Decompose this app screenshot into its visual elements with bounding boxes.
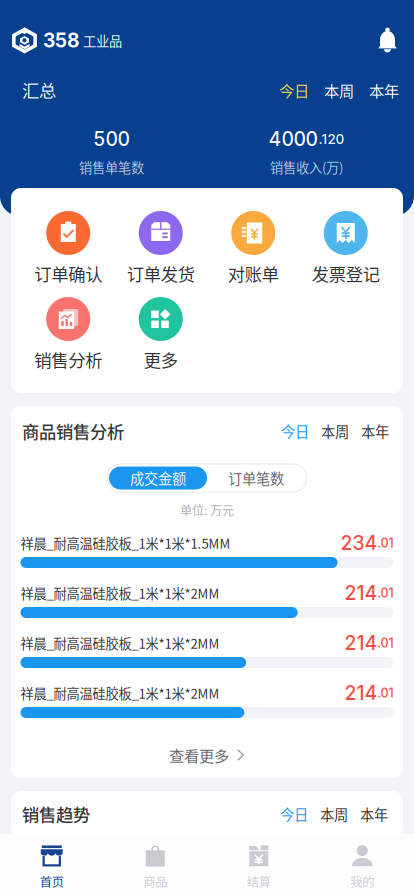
staticText: .01 bbox=[377, 585, 393, 601]
staticText: 订单笔数 bbox=[228, 468, 284, 488]
staticText: 销售趋势 bbox=[22, 801, 90, 826]
button[interactable]: 查看更多 bbox=[11, 735, 403, 775]
button[interactable]: 首页 bbox=[0, 834, 103, 896]
staticText: 成交金额 bbox=[130, 468, 186, 488]
staticText: .01 bbox=[377, 635, 393, 651]
button[interactable]: 通知 bbox=[374, 27, 401, 54]
staticText: 我的 bbox=[350, 873, 374, 890]
staticText: 本周 bbox=[320, 804, 348, 824]
button[interactable]: 更多 bbox=[114, 297, 207, 368]
staticText: 今日 bbox=[280, 804, 308, 824]
staticText: 祥晨_耐高温硅胶板_1米*1米*1.5MM bbox=[20, 533, 230, 553]
button[interactable]: 订单确认 bbox=[22, 211, 114, 282]
staticText: 汇总 bbox=[22, 77, 56, 102]
staticText: 214 bbox=[344, 631, 377, 655]
button[interactable]: 发票登记 bbox=[299, 211, 392, 282]
staticText: 订单确认 bbox=[34, 261, 102, 286]
staticText: 234 bbox=[340, 531, 377, 555]
staticText: 500 bbox=[93, 127, 129, 151]
staticText: 对账单 bbox=[228, 261, 279, 286]
staticText: 本年 bbox=[361, 421, 389, 441]
button[interactable]: 今日 bbox=[280, 804, 308, 824]
staticText: 本年 bbox=[360, 804, 388, 824]
button[interactable]: 本年 bbox=[348, 804, 388, 824]
staticText: 发票登记 bbox=[312, 261, 380, 286]
button[interactable]: 成交金额 bbox=[109, 466, 207, 489]
staticText: 工业品 bbox=[83, 31, 122, 50]
staticText: 单位: 万元 bbox=[180, 501, 234, 519]
button[interactable]: 销售分析 bbox=[22, 297, 114, 368]
staticText: 本周 bbox=[321, 421, 349, 441]
staticText: 祥晨_耐高温硅胶板_1米*1米*2MM bbox=[20, 633, 219, 653]
button[interactable]: 对账单 bbox=[207, 211, 299, 282]
staticText: 销售单笔数 bbox=[79, 157, 144, 177]
staticText: 4000 bbox=[268, 127, 317, 151]
staticText: 更多 bbox=[144, 347, 178, 372]
button[interactable]: 订单发货 bbox=[114, 211, 207, 282]
button[interactable]: 今日 bbox=[279, 79, 309, 101]
button[interactable]: 今日 bbox=[281, 421, 309, 441]
staticText: .01 bbox=[377, 535, 393, 551]
staticText: 今日 bbox=[279, 79, 309, 101]
button[interactable]: 本年 bbox=[349, 421, 389, 441]
staticText: 查看更多 bbox=[169, 744, 229, 766]
button[interactable]: 结算 bbox=[207, 834, 310, 896]
staticText: 商品 bbox=[143, 873, 167, 890]
button[interactable]: 我的 bbox=[310, 834, 414, 896]
button[interactable]: 本年 bbox=[354, 79, 399, 101]
button[interactable]: 订单笔数 bbox=[207, 466, 305, 489]
staticText: 商品销售分析 bbox=[22, 418, 124, 443]
staticText: 今日 bbox=[281, 421, 309, 441]
staticText: 214 bbox=[344, 581, 377, 605]
staticText: 358 bbox=[43, 29, 80, 52]
staticText: 销售收入(万) bbox=[270, 157, 343, 177]
staticText: 祥晨_耐高温硅胶板_1米*1米*2MM bbox=[20, 683, 219, 703]
staticText: .120 bbox=[318, 131, 344, 147]
button[interactable]: 商品 bbox=[103, 834, 207, 896]
staticText: 祥晨_耐高温硅胶板_1米*1米*2MM bbox=[20, 583, 219, 603]
staticText: 销售分析 bbox=[34, 347, 102, 372]
staticText: 本周 bbox=[324, 79, 354, 101]
button[interactable]: 本周 bbox=[308, 804, 348, 824]
button[interactable]: 本周 bbox=[309, 421, 349, 441]
staticText: 214 bbox=[344, 681, 377, 705]
staticText: 首页 bbox=[40, 873, 64, 890]
staticText: 本年 bbox=[369, 79, 399, 101]
staticText: .01 bbox=[377, 685, 393, 701]
button[interactable]: 本周 bbox=[309, 79, 354, 101]
staticText: 订单发货 bbox=[127, 261, 195, 286]
staticText: 结算 bbox=[247, 873, 271, 890]
